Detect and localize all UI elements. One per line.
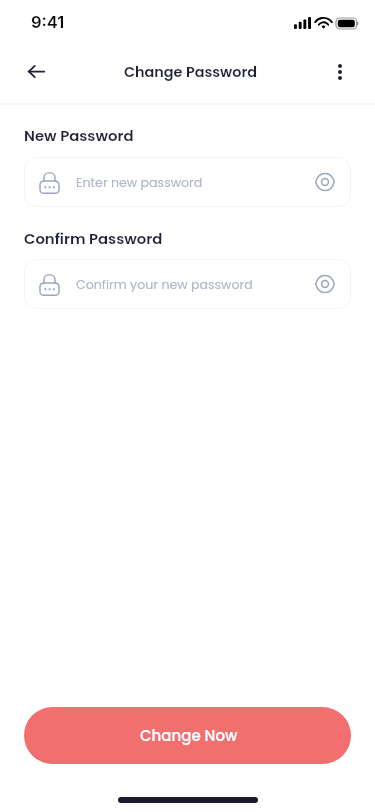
button[interactable]: Change Now: [24, 707, 351, 764]
staticText: Change Now: [140, 725, 238, 746]
staticText: Confirm Password: [24, 228, 163, 249]
staticText: 9:41: [31, 12, 65, 32]
staticText: Enter new password: [76, 174, 305, 192]
staticText: New Password: [24, 125, 134, 146]
button[interactable]: Show password: [305, 264, 345, 304]
button[interactable]: Enter new password: [24, 157, 351, 207]
button[interactable]: Back: [14, 49, 58, 93]
button[interactable]: Show password: [305, 162, 345, 202]
staticText: Confirm your new password: [76, 276, 305, 294]
button[interactable]: More options: [318, 50, 362, 94]
button[interactable]: Confirm your new password: [24, 259, 351, 309]
staticText: Change Password: [124, 62, 257, 82]
